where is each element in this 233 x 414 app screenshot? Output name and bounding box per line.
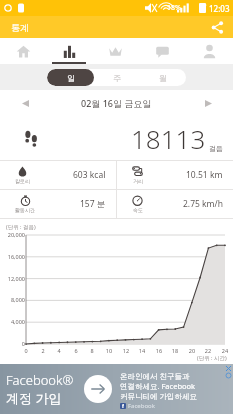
staticText: 연결하세요. Facebook [120, 381, 196, 391]
button[interactable]: 일 [47, 69, 94, 86]
staticText: 02월 16일 금요일 [81, 97, 152, 109]
staticText: 20,000 [2, 231, 25, 238]
staticText: f [122, 403, 124, 409]
staticText: 24 [220, 347, 230, 354]
staticText: 2.75 km/h [183, 198, 223, 210]
button[interactable]: Previous day [16, 94, 34, 112]
staticText: ⚡ [202, 4, 207, 12]
staticText: 걸음 [209, 144, 223, 153]
staticText: 칼로리 [15, 178, 30, 184]
staticText: 커뮤니티에 가입하세요 [120, 391, 197, 401]
staticText: 0 [21, 347, 31, 354]
button[interactable]: Next day [199, 94, 217, 112]
staticText: Facebook [128, 402, 155, 410]
staticText: 0 [2, 340, 25, 347]
staticText: 603 kcal [73, 169, 106, 181]
button[interactable]: 월 [140, 69, 186, 86]
button[interactable]: 칼로리 [0, 161, 116, 189]
button[interactable]: Ranking [92, 38, 139, 64]
staticText: 온라인에서 친구들과 [120, 371, 190, 381]
staticText: 10.51 km [186, 169, 223, 181]
staticText: 12,000 [2, 275, 25, 282]
button[interactable]: Statistics [46, 38, 92, 64]
staticText: 16 [154, 347, 164, 354]
staticText: 활동시간 [15, 207, 35, 213]
button[interactable]: Home [0, 38, 46, 64]
staticText: 14 [137, 347, 147, 354]
staticText: 4,000 [2, 318, 25, 325]
staticText: (단위 : 시간) [197, 354, 227, 362]
button[interactable]: Share [207, 17, 227, 37]
button[interactable]: Ad info [225, 372, 232, 379]
staticText: 157 분 [80, 198, 106, 210]
staticText: 일 [67, 73, 75, 83]
staticText: 18113 [131, 121, 206, 156]
button[interactable]: 주 [94, 69, 140, 86]
staticText: 6 [71, 347, 81, 354]
staticText: 22 [203, 347, 213, 354]
staticText: 월 [159, 73, 167, 83]
staticText: 8 [87, 347, 97, 354]
staticText: Facebook® [6, 371, 74, 389]
staticText: 거리 [133, 178, 143, 184]
staticText: 18 [170, 347, 180, 354]
staticText: 16,000 [2, 253, 25, 260]
button[interactable]: Facebook® [0, 364, 233, 414]
button[interactable]: 거리 [117, 161, 233, 189]
staticText: 2 [38, 347, 48, 354]
staticText: 통계 [11, 22, 29, 33]
button[interactable]: Messages [139, 38, 186, 64]
staticText: 12 [121, 347, 131, 354]
button[interactable]: Close ad [225, 365, 232, 372]
staticText: 10 [104, 347, 114, 354]
staticText: 20 [187, 347, 197, 354]
staticText: 18% [167, 3, 181, 13]
staticText: (단위 : 걸음) [6, 223, 36, 231]
button[interactable]: 속도 [117, 190, 233, 218]
staticText: 4 [54, 347, 64, 354]
button[interactable]: Profile [186, 38, 233, 64]
staticText: 주 [113, 73, 121, 83]
button[interactable]: 활동시간 [0, 190, 116, 218]
staticText: 8,000 [2, 296, 25, 303]
staticText: 12:03 [209, 3, 230, 14]
staticText: 속도 [133, 207, 143, 213]
staticText: 계정 가입 [6, 389, 62, 407]
